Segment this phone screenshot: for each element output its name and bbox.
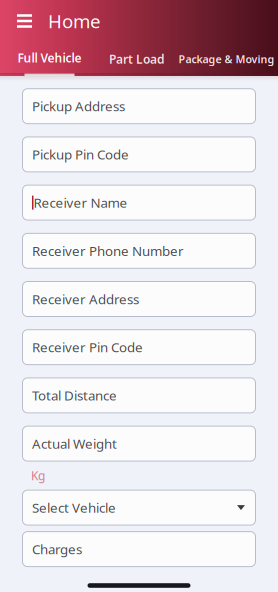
staticText: Receiver Pin Code [32,338,143,356]
staticText: Select Vehicle [32,499,116,516]
staticText: Receiver Name [33,194,127,211]
button[interactable]: Receiver Name [22,185,256,221]
button[interactable]: Total Distance [22,377,256,413]
button[interactable]: Pickup Address [22,88,256,124]
staticText: Total Distance [32,386,117,404]
staticText: Pickup Address [32,97,125,115]
button[interactable]: Select Vehicle [22,490,256,526]
button[interactable]: Charges [22,531,256,567]
button[interactable]: Pickup Pin Code [22,136,256,172]
button[interactable]: Package & Moving [175,42,278,76]
staticText: Kg [31,468,45,483]
staticText: Full Vehicle [17,50,81,66]
staticText: Receiver Address [32,290,139,308]
staticText: Part Load [109,51,165,67]
button[interactable]: Receiver Pin Code [22,329,256,365]
button[interactable]: Receiver Phone Number [22,233,256,269]
staticText: Charges [32,540,82,558]
staticText: Home [48,9,101,33]
button[interactable]: Part Load [99,42,175,76]
staticText: Package & Moving [178,52,274,66]
staticText: Actual Weight [32,435,117,452]
button[interactable]: Receiver Address [22,281,256,317]
button[interactable]: Menu [0,6,48,36]
staticText: Pickup Pin Code [32,145,129,163]
button[interactable]: Actual Weight [22,426,256,462]
staticText: Receiver Phone Number [32,242,184,260]
button[interactable]: Full Vehicle [0,42,99,76]
